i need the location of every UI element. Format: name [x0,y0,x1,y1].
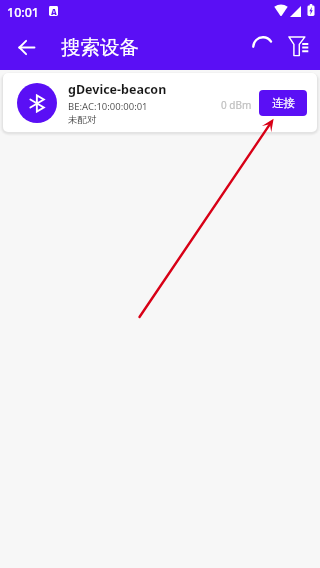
button[interactable]: Filter [280,28,316,64]
button[interactable]: 连接 [259,90,307,116]
staticText: 搜索设备 [61,35,139,60]
staticText: 未配对 [68,114,97,126]
staticText: A [51,6,57,16]
button[interactable]: Back [11,32,41,62]
button[interactable]: gDevice-beacon [3,73,317,132]
staticText: 0 dBm [221,98,252,112]
staticText: gDevice-beacon [68,81,167,98]
staticText: 10:01 [7,4,40,21]
button[interactable]: Refreshing [245,29,281,65]
staticText: 连接 [272,96,295,110]
staticText: BE:AC:10:00:00:01 [68,100,148,113]
